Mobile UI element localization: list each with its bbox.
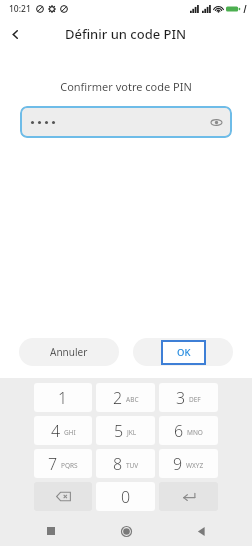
staticText: 5	[114, 420, 124, 442]
button[interactable]: 7	[34, 449, 92, 478]
button[interactable]: Show PIN	[206, 112, 226, 132]
staticText: DEF	[189, 395, 201, 404]
button[interactable]: Delete	[34, 482, 92, 511]
staticText: 9	[173, 453, 183, 475]
button[interactable]: 6	[159, 416, 218, 445]
button[interactable]: Back	[188, 518, 214, 544]
staticText: Définir un code PIN	[65, 25, 187, 43]
button[interactable]: Enter	[159, 482, 218, 511]
staticText: JKL	[127, 428, 137, 437]
button[interactable]: 5	[96, 416, 155, 445]
staticText: Annuler	[50, 345, 88, 359]
button[interactable]: 2	[96, 383, 155, 412]
button[interactable]: Home	[113, 518, 139, 544]
button[interactable]: 4	[34, 416, 92, 445]
button[interactable]: Show PIN	[20, 106, 232, 138]
button[interactable]: 1	[34, 383, 92, 412]
staticText: 2	[113, 387, 123, 409]
staticText: 3	[176, 387, 186, 409]
staticText: GHI	[64, 428, 76, 437]
button[interactable]: 0	[96, 482, 155, 511]
button[interactable]: Annuler	[19, 338, 119, 366]
button[interactable]: Back	[0, 19, 30, 49]
staticText: 6	[174, 420, 184, 442]
staticText: 0	[121, 486, 131, 508]
button[interactable]: 8	[96, 449, 155, 478]
staticText: PQRS	[61, 461, 78, 470]
staticText: OK	[177, 346, 191, 359]
staticText: TUV	[126, 461, 139, 470]
staticText: 8	[113, 453, 123, 475]
staticText: ABC	[126, 395, 139, 404]
staticText: 10:21	[9, 3, 31, 15]
button[interactable]: 9	[159, 449, 218, 478]
staticText: MNO	[187, 428, 203, 437]
button[interactable]: Recents	[38, 518, 64, 544]
staticText: 7	[48, 453, 58, 475]
button[interactable]: OK	[133, 338, 233, 366]
button[interactable]: 3	[159, 383, 218, 412]
staticText: Confirmer votre code PIN	[0, 79, 252, 94]
staticText: 1	[58, 387, 68, 409]
staticText: 4	[51, 420, 61, 442]
staticText: WXYZ	[186, 461, 204, 470]
